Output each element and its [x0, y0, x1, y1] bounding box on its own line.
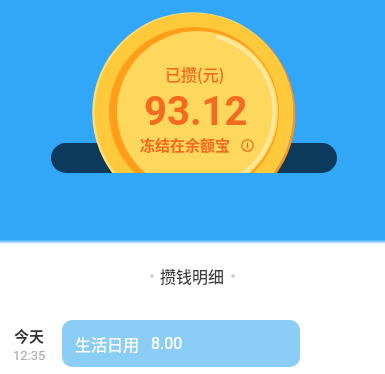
staticText: 攒钱明细 — [160, 264, 225, 287]
button[interactable]: 今天 — [0, 320, 385, 367]
staticText: 8.00 — [151, 334, 183, 353]
staticText: 今天 — [14, 325, 45, 347]
other: Info — [240, 138, 254, 152]
staticText: 12:35 — [13, 348, 46, 363]
staticText: 已攒(元) — [165, 62, 225, 85]
staticText: 冻结在余额宝 — [140, 134, 231, 156]
staticText: 生活日用 — [75, 332, 140, 355]
staticText: 93.12 — [144, 88, 248, 135]
button[interactable]: 冻结在余额宝 — [140, 134, 254, 156]
